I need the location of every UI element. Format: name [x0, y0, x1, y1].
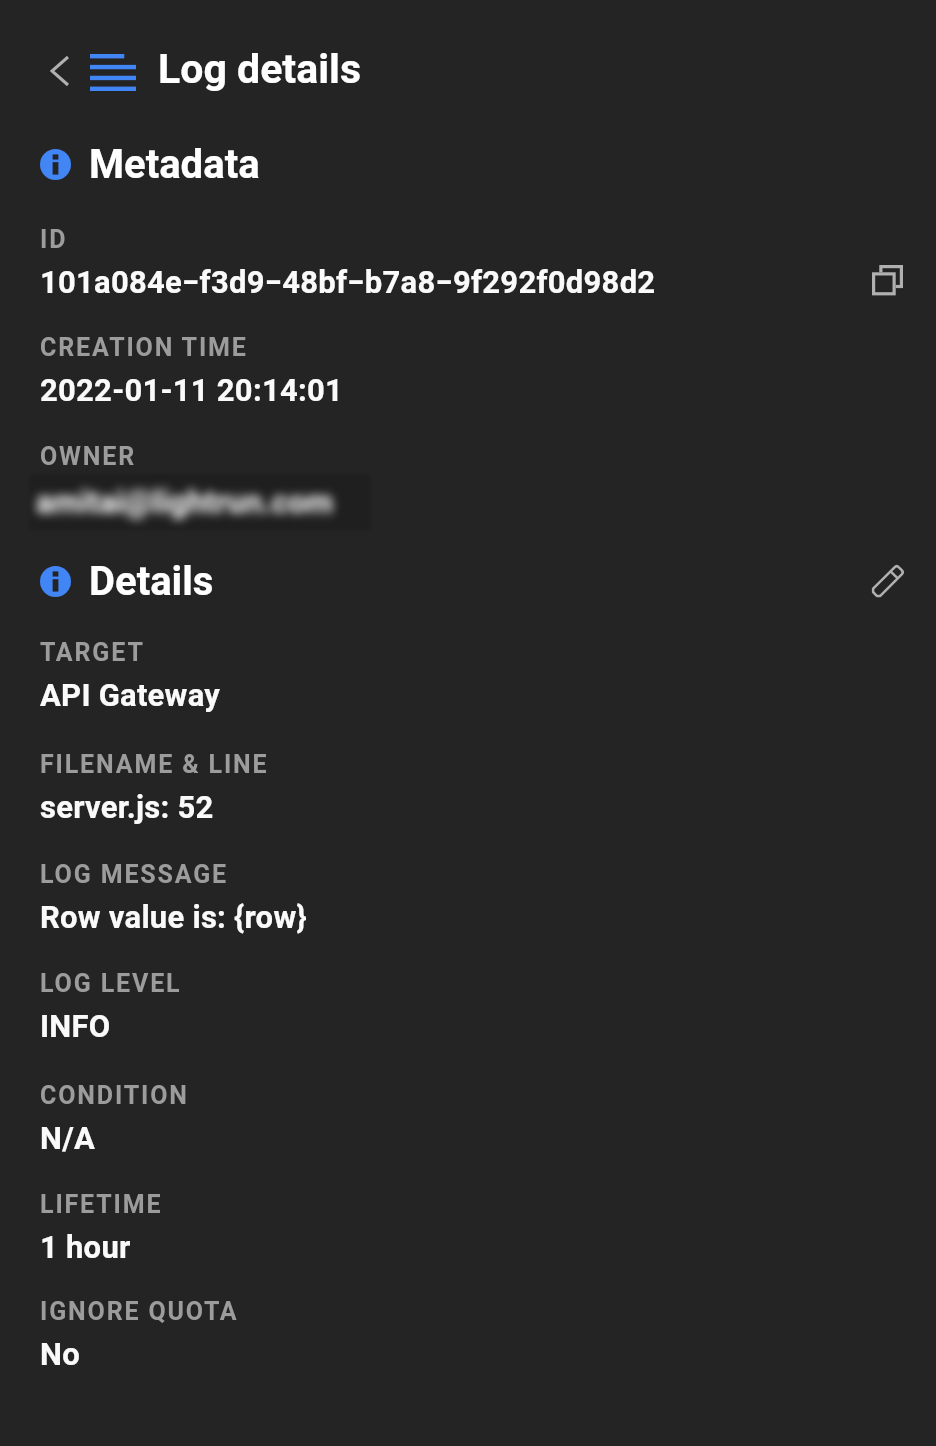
staticText: LOG MESSAGE [40, 860, 228, 889]
staticText: amitai@lightrun.com [36, 484, 334, 520]
staticText: Metadata [89, 141, 260, 188]
staticText: LOG LEVEL [40, 969, 182, 998]
staticText: OWNER [40, 442, 137, 471]
staticText: 1 hour [40, 1229, 131, 1265]
staticText: Row value is: {row} [40, 899, 307, 935]
button[interactable]: Copy ID [861, 254, 913, 306]
staticText: ID [40, 225, 68, 254]
staticText: FILENAME & LINE [40, 750, 269, 779]
staticText: API Gateway [40, 677, 221, 713]
button[interactable]: Log [85, 45, 141, 99]
staticText: N/A [40, 1120, 96, 1156]
staticText: 2022-01-11 20:14:01 [40, 372, 344, 408]
staticText: TARGET [40, 638, 145, 667]
staticText: Log details [158, 45, 361, 93]
staticText: Details [89, 558, 214, 605]
staticText: No [40, 1336, 80, 1372]
staticText: LIFETIME [40, 1190, 163, 1219]
staticText: 101a084e‒f3d9‒48bf‒b7a8‒9f292f0d98d2 [40, 264, 656, 300]
button[interactable]: Edit details [862, 554, 914, 606]
staticText: INFO [40, 1008, 111, 1044]
staticText: IGNORE QUOTA [40, 1297, 239, 1326]
staticText: server.js: 52 [40, 789, 214, 825]
staticText: CONDITION [40, 1081, 189, 1110]
button[interactable]: Back [35, 46, 84, 95]
staticText: CREATION TIME [40, 333, 248, 362]
